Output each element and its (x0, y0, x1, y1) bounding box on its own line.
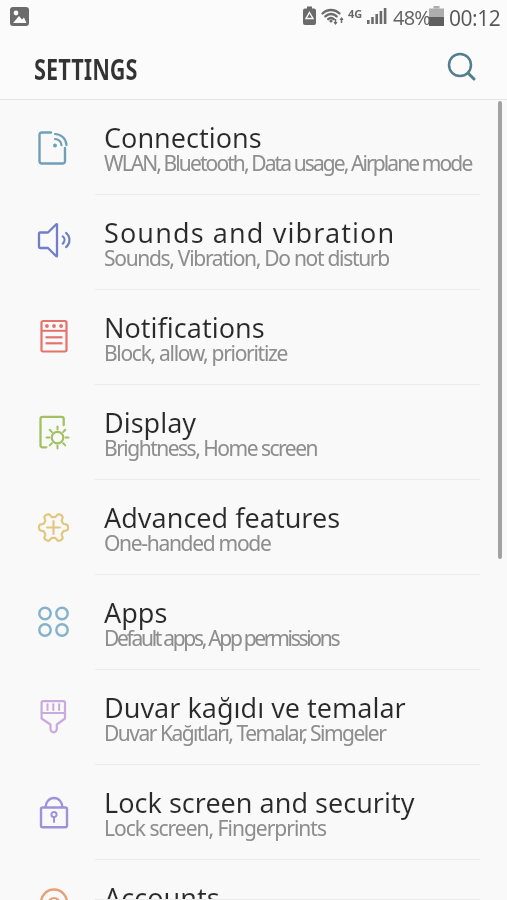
staticText: 00:12 (449, 4, 501, 33)
staticText: 4G (348, 6, 363, 21)
button[interactable]: Advanced features (0, 480, 507, 575)
staticText: Brightness, Home screen (104, 434, 318, 463)
staticText: Default apps, App permissions (104, 624, 339, 653)
staticText: Sounds, Vibration, Do not disturb (104, 244, 389, 273)
button[interactable]: Accounts (0, 860, 507, 900)
staticText: Lock screen and security (104, 784, 415, 821)
button[interactable]: Apps (0, 575, 507, 670)
staticText: 48% (393, 4, 431, 31)
staticText: Notifications (104, 309, 265, 346)
staticText: WLAN, Bluetooth, Data usage, Airplane mo… (104, 149, 472, 178)
staticText: Display (104, 404, 197, 441)
staticText: Apps (104, 594, 168, 631)
button[interactable]: Duvar kağıdı ve temalar (0, 670, 507, 765)
staticText: Sounds and vibration (104, 214, 396, 251)
staticText: SETTINGS (34, 49, 138, 88)
staticText: Connections (104, 119, 262, 156)
staticText: Accounts (104, 879, 220, 900)
button[interactable]: Notifications (0, 290, 507, 385)
staticText: Block, allow, prioritize (104, 339, 288, 368)
staticText: Advanced features (104, 499, 341, 536)
button[interactable]: Lock screen and security (0, 765, 507, 860)
staticText: Lock screen, Fingerprints (104, 814, 326, 843)
button[interactable]: Connections (0, 100, 507, 195)
staticText: Duvar Kağıtları, Temalar, Simgeler (104, 719, 386, 748)
button[interactable]: Sounds and vibration (0, 195, 507, 290)
button[interactable] (440, 45, 480, 85)
button[interactable]: Display (0, 385, 507, 480)
staticText: Duvar kağıdı ve temalar (104, 689, 406, 726)
staticText: One-handed mode (104, 529, 271, 558)
